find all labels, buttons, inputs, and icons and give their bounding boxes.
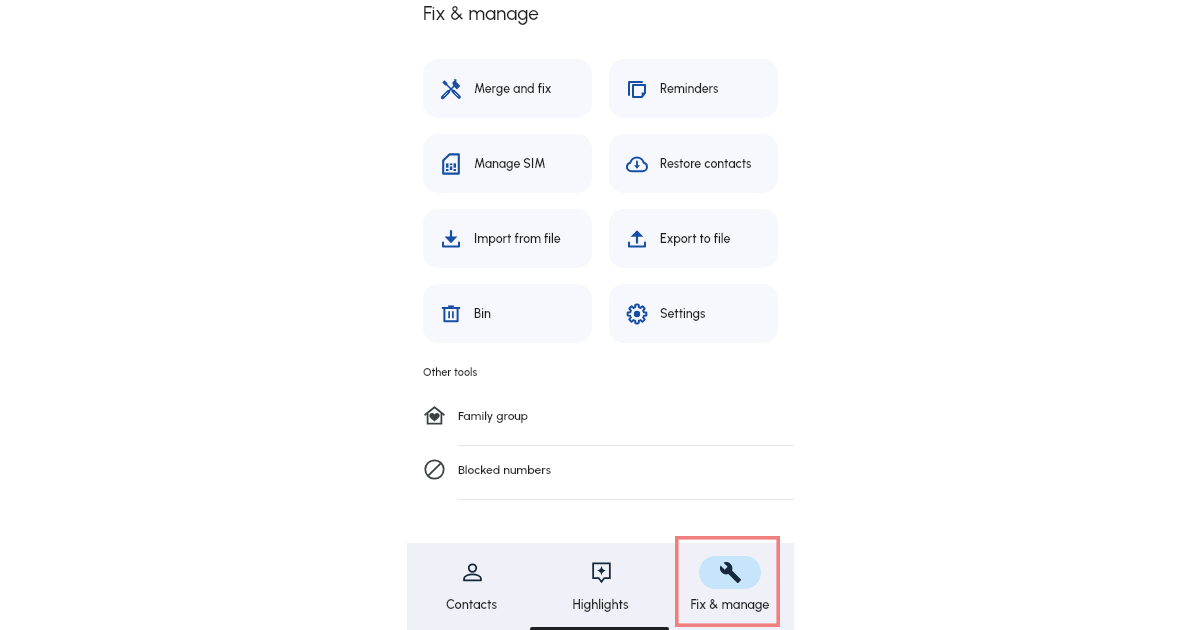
button[interactable]: Contacts — [407, 543, 536, 630]
button[interactable]: Reminders — [609, 59, 778, 118]
button[interactable]: Import from file — [423, 209, 592, 268]
staticText: Bin — [474, 306, 491, 321]
staticText: Highlights — [572, 597, 629, 612]
staticText: Blocked numbers — [458, 462, 551, 477]
staticText: Settings — [660, 306, 706, 321]
staticText: Fix & manage — [423, 2, 539, 25]
button[interactable]: Export to file — [609, 209, 778, 268]
staticText: Export to file — [660, 231, 731, 246]
button[interactable]: Family group — [407, 389, 794, 442]
button[interactable]: Highlights — [536, 543, 665, 630]
button[interactable]: Bin — [423, 284, 592, 343]
staticText: Import from file — [474, 231, 561, 246]
staticText: Reminders — [660, 81, 719, 96]
staticText: Restore contacts — [660, 156, 752, 171]
button[interactable]: Merge and fix — [423, 59, 592, 118]
button[interactable]: Fix & manage — [665, 543, 794, 630]
staticText: Contacts — [446, 597, 497, 612]
staticText: Merge and fix — [474, 81, 552, 96]
staticText: Other tools — [423, 366, 478, 379]
button[interactable]: Restore contacts — [609, 134, 778, 193]
staticText: Family group — [458, 408, 529, 423]
staticText: Fix & manage — [690, 597, 770, 612]
button[interactable]: Settings — [609, 284, 778, 343]
button[interactable]: Manage SIM — [423, 134, 592, 193]
staticText: Manage SIM — [474, 156, 546, 171]
button[interactable]: Blocked numbers — [407, 443, 794, 496]
